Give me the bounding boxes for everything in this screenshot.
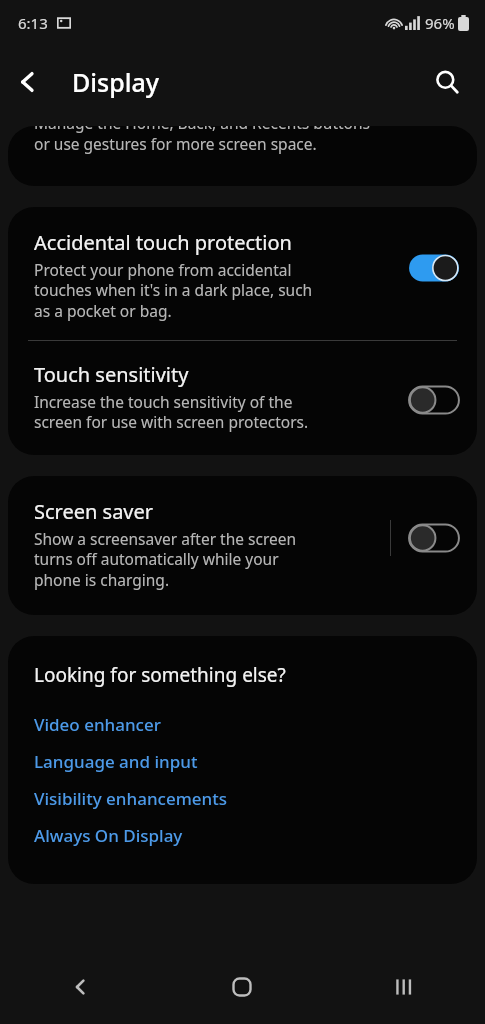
button[interactable]: Visibility enhancements bbox=[34, 780, 457, 817]
staticText: Looking for something else? bbox=[34, 662, 286, 688]
staticText: 96% bbox=[425, 13, 455, 33]
staticText: Display bbox=[72, 65, 159, 99]
button[interactable]: Manage the Home, Back, and Recents butto… bbox=[8, 126, 477, 186]
staticText: Manage the Home, Back, and Recents butto… bbox=[34, 126, 370, 133]
staticText: Show a screensaver after the screen turn… bbox=[34, 528, 297, 591]
button[interactable]: Toggle off bbox=[405, 383, 463, 417]
button[interactable]: Screen saver bbox=[8, 476, 477, 615]
button[interactable]: Accidental touch protection bbox=[8, 207, 477, 340]
staticText: Touch sensitivity bbox=[34, 361, 189, 388]
button[interactable]: Back bbox=[0, 54, 56, 110]
staticText: Language and input bbox=[34, 750, 198, 773]
staticText: Screen saver bbox=[34, 498, 154, 525]
button[interactable]: Toggle off bbox=[405, 521, 463, 555]
button[interactable]: Always On Display bbox=[34, 817, 457, 854]
button[interactable]: Recents bbox=[323, 950, 485, 1024]
staticText: Visibility enhancements bbox=[34, 787, 227, 810]
staticText: or use gestures for more screen space. bbox=[34, 133, 317, 154]
staticText: 6:13 bbox=[18, 13, 48, 33]
staticText: Always On Display bbox=[34, 824, 183, 847]
button[interactable]: Language and input bbox=[34, 743, 457, 780]
button[interactable]: Toggle on bbox=[405, 251, 463, 285]
button[interactable]: Home bbox=[161, 950, 323, 1024]
button[interactable]: Back bbox=[0, 950, 161, 1024]
button[interactable]: Touch sensitivity bbox=[8, 341, 477, 455]
staticText: Accidental touch protection bbox=[34, 229, 292, 256]
button[interactable]: Search bbox=[421, 56, 473, 108]
button[interactable]: Video enhancer bbox=[34, 706, 457, 743]
staticText: Increase the touch sensitivity of the sc… bbox=[34, 391, 309, 433]
staticText: Protect your phone from accidental touch… bbox=[34, 259, 313, 322]
staticText: Video enhancer bbox=[34, 713, 161, 736]
